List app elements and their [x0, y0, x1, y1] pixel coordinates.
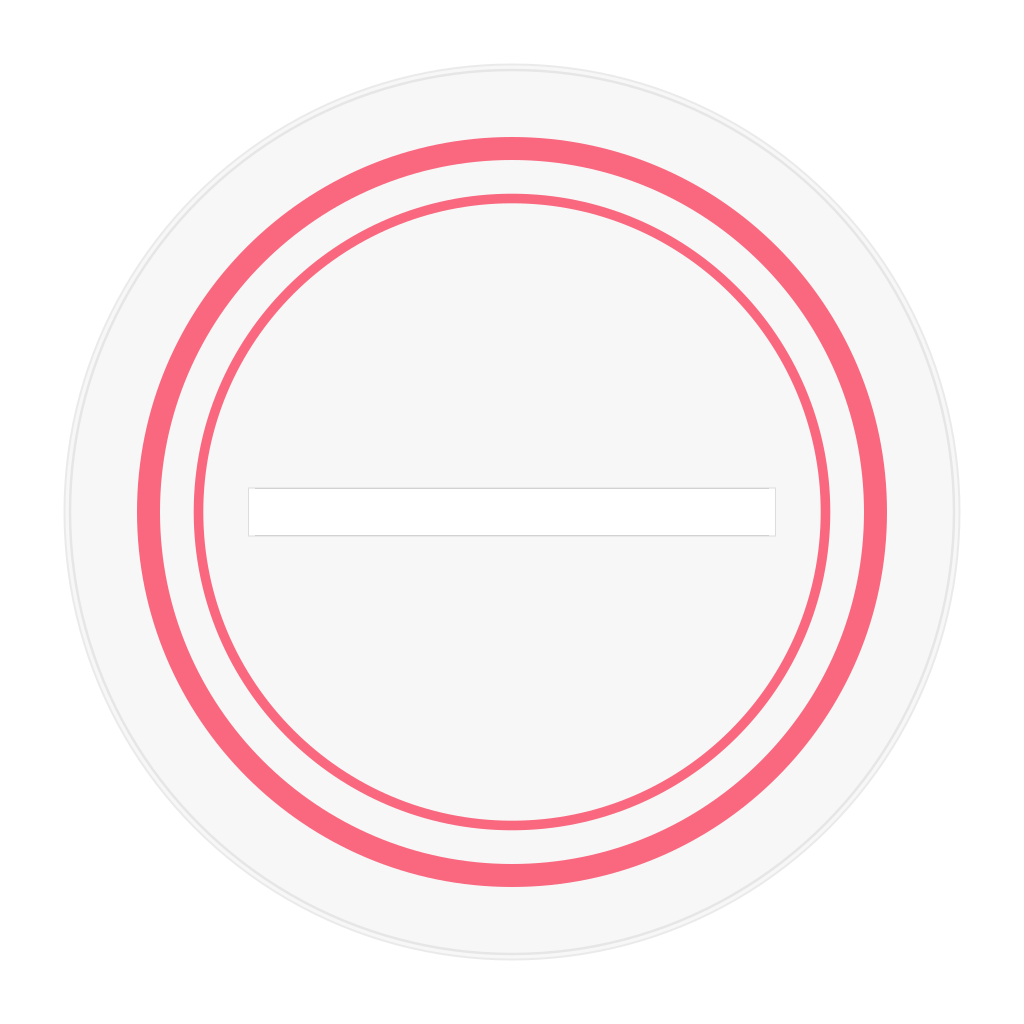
- button[interactable]: Activity detail: [248, 488, 775, 536]
